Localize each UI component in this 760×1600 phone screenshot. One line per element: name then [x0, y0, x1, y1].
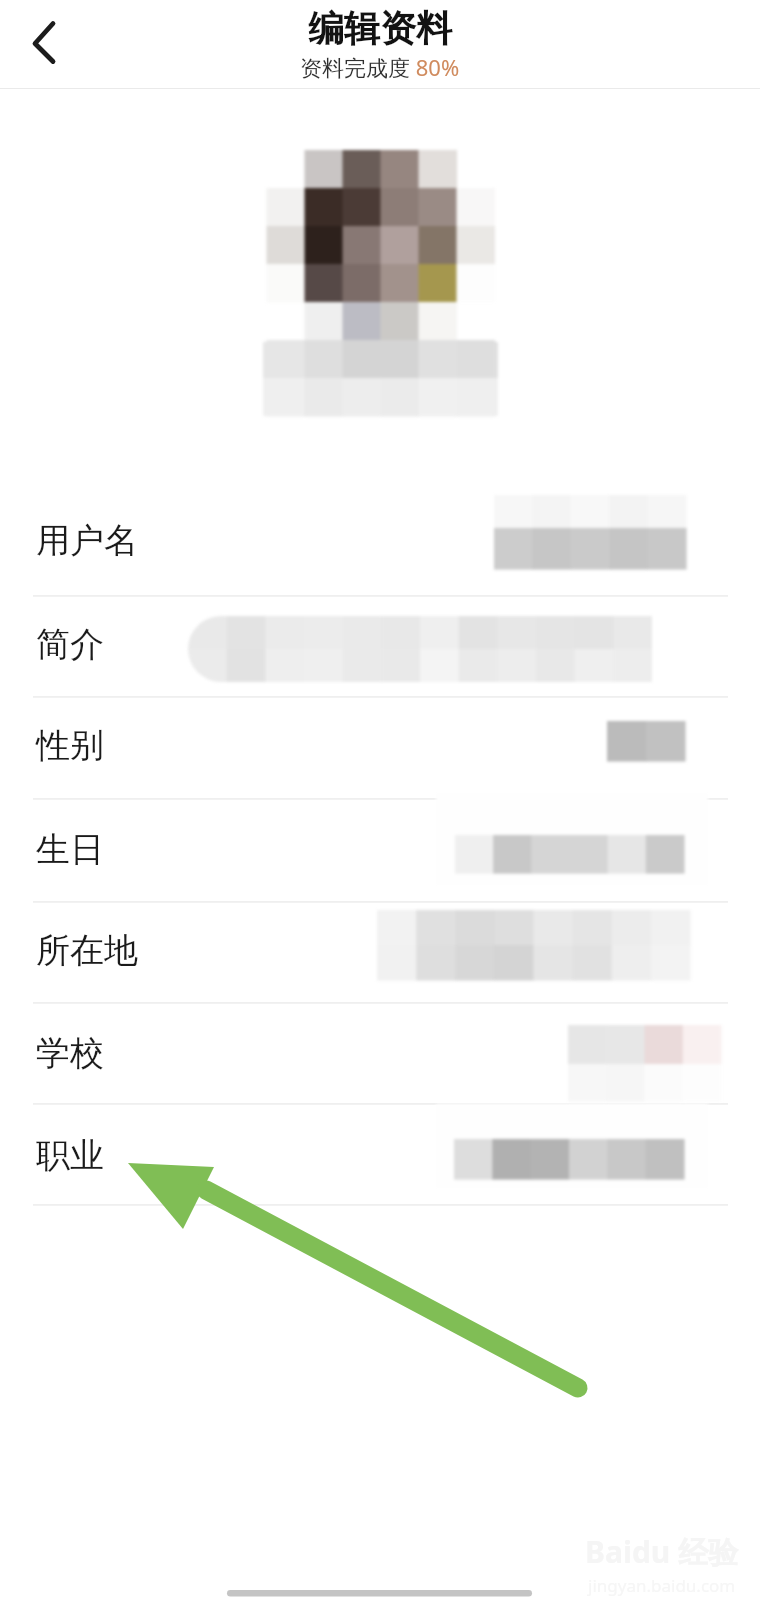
button[interactable]: 用户名 [0, 493, 760, 595]
staticText: Baidu 经验 [585, 1531, 739, 1572]
staticText: 所在地 [36, 929, 138, 972]
staticText: 性别 [36, 724, 104, 767]
button[interactable]: 所在地 [0, 901, 760, 1002]
button[interactable]: 性别 [0, 696, 760, 798]
button[interactable]: 简介 [0, 595, 760, 696]
staticText: 学校 [36, 1032, 104, 1075]
staticText: jingyan.baidu.com [588, 1574, 736, 1597]
staticText: 职业 [36, 1134, 104, 1177]
button[interactable]: 学校 [0, 1002, 760, 1103]
button[interactable]: 生日 [0, 798, 760, 901]
staticText: 用户名 [36, 519, 138, 562]
staticText: 简介 [36, 623, 104, 666]
staticText: 生日 [36, 828, 104, 871]
staticText: 编辑资料 [308, 6, 452, 51]
staticText: 资料完成度 80% [300, 52, 460, 82]
button[interactable]: 职业 [0, 1103, 760, 1204]
button[interactable]: Back [8, 9, 80, 81]
